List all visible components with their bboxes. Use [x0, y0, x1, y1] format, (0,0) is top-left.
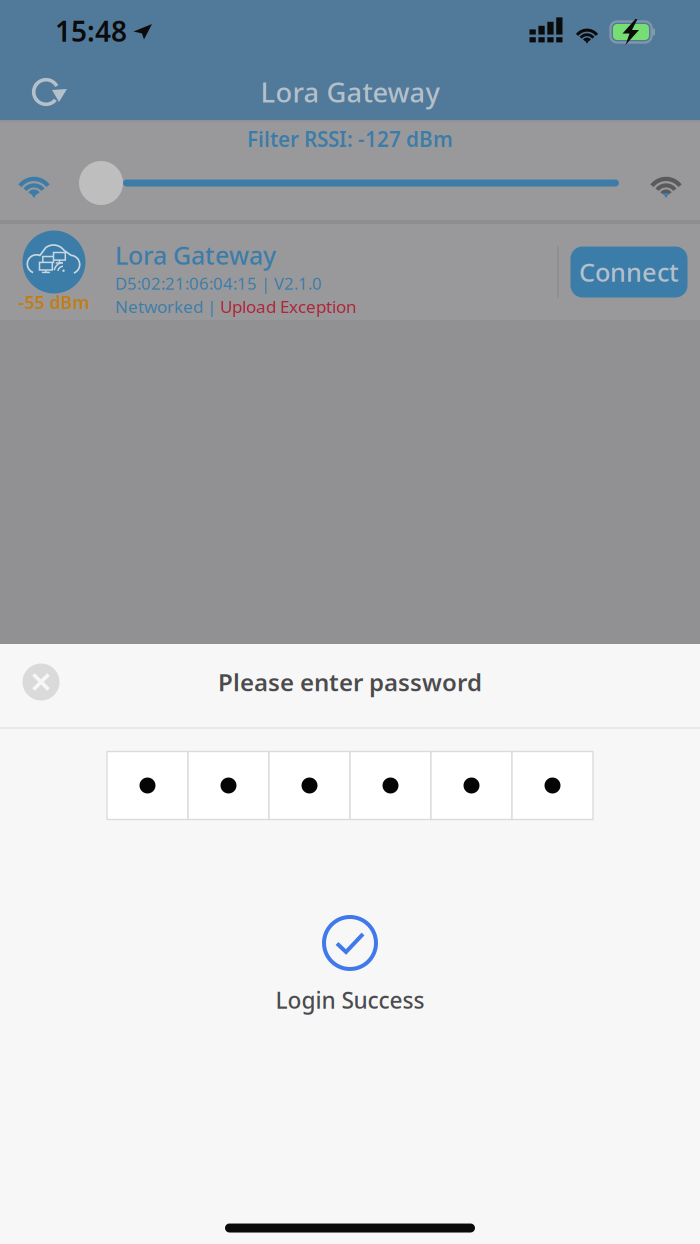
- staticText: Connect: [579, 255, 679, 289]
- staticText: Login Success: [275, 985, 424, 1015]
- button[interactable]: Refresh: [14, 63, 86, 121]
- staticText: Networked: [115, 295, 207, 318]
- staticText: Please enter password: [218, 666, 482, 698]
- staticText: Lora Gateway: [260, 73, 439, 111]
- staticText: Filter RSSI: -127 dBm: [247, 125, 453, 153]
- staticText: |: [207, 295, 220, 318]
- staticText: 15:48: [55, 12, 127, 50]
- staticText: Upload Exception: [220, 295, 357, 318]
- staticText: D5:02:21:06:04:15 | V2.1.0: [115, 272, 322, 295]
- button[interactable]: Connect: [570, 246, 687, 297]
- staticText: Lora Gateway: [115, 238, 276, 272]
- button[interactable]: Close: [13, 654, 69, 710]
- staticText: -55 dBm: [18, 290, 89, 314]
